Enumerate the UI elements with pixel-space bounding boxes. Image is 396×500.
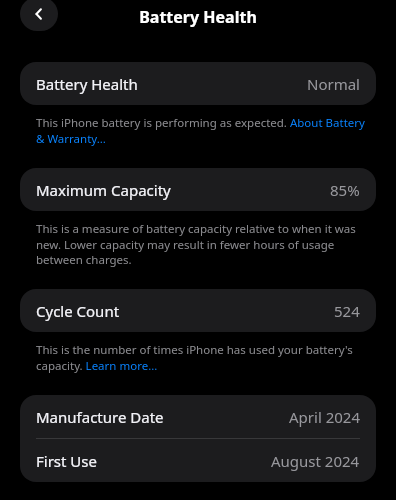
button[interactable]: Cycle Count [20,289,376,332]
button[interactable]: Maximum Capacity [20,168,376,211]
staticText: Battery Health [36,74,138,94]
staticText: This iPhone battery is performing as exp… [36,115,370,146]
staticText: Manufacture Date [36,407,164,427]
staticText: Maximum Capacity [36,180,171,200]
staticText: This is the number of times iPhone has u… [36,342,370,373]
staticText: Battery Health [0,6,396,28]
staticText: This is a measure of battery capacity re… [36,221,370,267]
staticText: Normal [307,74,360,94]
button[interactable]: First Use [20,439,376,482]
staticText: April 2024 [289,407,360,427]
staticText: 524 [334,301,360,321]
staticText: First Use [36,451,97,471]
staticText: August 2024 [271,451,360,471]
staticText: Cycle Count [36,301,120,321]
staticText: 85% [330,180,360,200]
button[interactable]: Back [20,0,58,31]
button[interactable]: Manufacture Date [20,395,376,438]
button[interactable]: Battery Health [20,62,376,105]
